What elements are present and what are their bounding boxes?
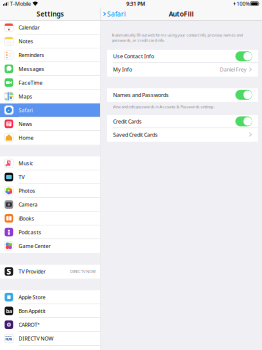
button[interactable]: Notes [0,35,100,48]
button[interactable]: Credit Cards [107,115,258,128]
staticText: Notes [19,38,34,45]
staticText: DIRECTV [5,336,12,337]
staticText: News [19,120,33,127]
staticText: ba [6,307,12,314]
button[interactable]: Safari [100,7,126,20]
staticText: DIRECTV NOW [19,335,54,342]
button[interactable]: TV [0,170,100,184]
button[interactable]: Reminders [0,48,100,62]
staticText: Saved Credit Cards [113,131,158,138]
staticText: Names and Passwords [113,91,169,98]
staticText: Apple Store [19,294,46,301]
staticText: TV Provider [19,268,46,275]
button[interactable]: Safari [0,103,100,117]
staticText: Podcasts [19,228,42,236]
button[interactable]: Photos [0,184,100,198]
button[interactable]: Saved Credit Cards [107,128,258,141]
staticText: Game Center [19,242,51,249]
staticText: Automatically fill out web forms using y… [111,32,242,43]
button[interactable]: iBooks [0,212,100,225]
button[interactable]: Calendar [0,21,100,35]
staticText: Settings [36,9,63,18]
staticText: iBooks [19,215,35,222]
staticText: My Info [113,66,132,73]
button[interactable]: Game Center [0,239,100,253]
button[interactable]: Names and Passwords [107,88,258,102]
button[interactable]: ba [0,304,100,318]
staticText: View and edit passwords in Accounts & Pa… [112,104,214,109]
button[interactable]: Use Contact Info [107,50,258,63]
staticText: DIRECTV NOW [70,269,96,274]
button[interactable]: FaceTime [0,76,100,90]
staticText: 9:31 PM [126,0,145,7]
staticText: NOW [5,338,12,341]
staticText: FaceTime [19,79,43,86]
button[interactable]: Maps [0,90,100,103]
staticText: Credit Cards [113,118,142,125]
staticText: Daniel Frey [220,66,247,73]
staticText: Home [19,134,34,141]
staticText: Calendar [19,24,40,31]
button[interactable]: Apple Store [0,290,100,304]
staticText: Camera [19,201,38,208]
staticText: AutoFill [169,9,194,18]
button[interactable]: Music [0,157,100,170]
staticText: Music [19,160,34,167]
staticText: CARROT⁵ [19,321,40,328]
staticText: Bon Appétit [19,307,46,314]
button[interactable]: Messages [0,62,100,76]
staticText: S [6,266,11,277]
button[interactable]: DIRECTV [0,332,100,346]
staticText: Messages [19,65,45,72]
staticText: Safari [107,9,126,18]
staticText: Use Contact Info [113,53,154,60]
staticText: 100% [236,0,249,7]
button[interactable]: My Info [107,63,258,76]
button[interactable]: Camera [0,198,100,212]
staticText: Safari [19,106,33,114]
button[interactable]: S [0,265,100,279]
button[interactable]: News [0,117,100,131]
button[interactable]: CARROT⁵ [0,318,100,332]
button[interactable]: Podcasts [0,225,100,239]
staticText: Photos [19,187,36,194]
staticText: Maps [19,93,33,100]
staticText: T-Mobile [10,0,31,7]
button[interactable]: Home [0,131,100,145]
staticText: TV [19,173,25,181]
staticText: Reminders [19,51,45,59]
